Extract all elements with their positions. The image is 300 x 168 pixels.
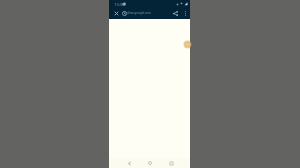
staticText: drive.google.com: [127, 11, 151, 15]
button[interactable]: Account: [183, 40, 192, 49]
button[interactable]: Recent apps: [166, 158, 176, 168]
staticText: 13:53: [114, 2, 125, 8]
button[interactable]: Close: [111, 8, 121, 18]
button[interactable]: Back: [124, 158, 134, 168]
button[interactable]: More options: [180, 8, 190, 18]
button[interactable]: Share: [170, 8, 180, 18]
button[interactable]: Home: [145, 158, 155, 168]
button[interactable]: Page info: [119, 8, 129, 18]
